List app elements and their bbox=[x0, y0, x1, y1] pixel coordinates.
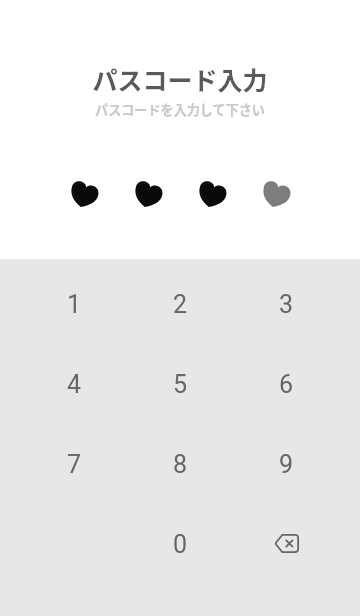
staticText: 9 bbox=[279, 450, 294, 479]
button[interactable]: 4 bbox=[0, 344, 120, 424]
button[interactable]: 9 bbox=[240, 424, 360, 504]
button[interactable]: 6 bbox=[240, 344, 360, 424]
button[interactable]: 0 bbox=[120, 504, 240, 584]
button[interactable]: 1 bbox=[0, 264, 120, 344]
button[interactable]: 5 bbox=[120, 344, 240, 424]
button[interactable]: Backspace bbox=[240, 504, 360, 584]
button[interactable]: 8 bbox=[120, 424, 240, 504]
staticText: 0 bbox=[173, 530, 188, 559]
staticText: 5 bbox=[173, 370, 188, 399]
staticText: 6 bbox=[279, 370, 294, 399]
button[interactable]: 7 bbox=[0, 424, 120, 504]
staticText: 2 bbox=[173, 290, 188, 319]
staticText: 3 bbox=[279, 290, 294, 319]
other: Backspace bbox=[274, 534, 299, 553]
staticText: 4 bbox=[67, 370, 82, 399]
staticText: パスコードを入力して下さい bbox=[95, 100, 265, 119]
button[interactable]: 3 bbox=[240, 264, 360, 344]
staticText: 8 bbox=[173, 450, 188, 479]
staticText: パスコード入力 bbox=[92, 61, 268, 97]
staticText: 7 bbox=[67, 450, 82, 479]
staticText: 1 bbox=[67, 290, 82, 319]
button[interactable]: 2 bbox=[120, 264, 240, 344]
